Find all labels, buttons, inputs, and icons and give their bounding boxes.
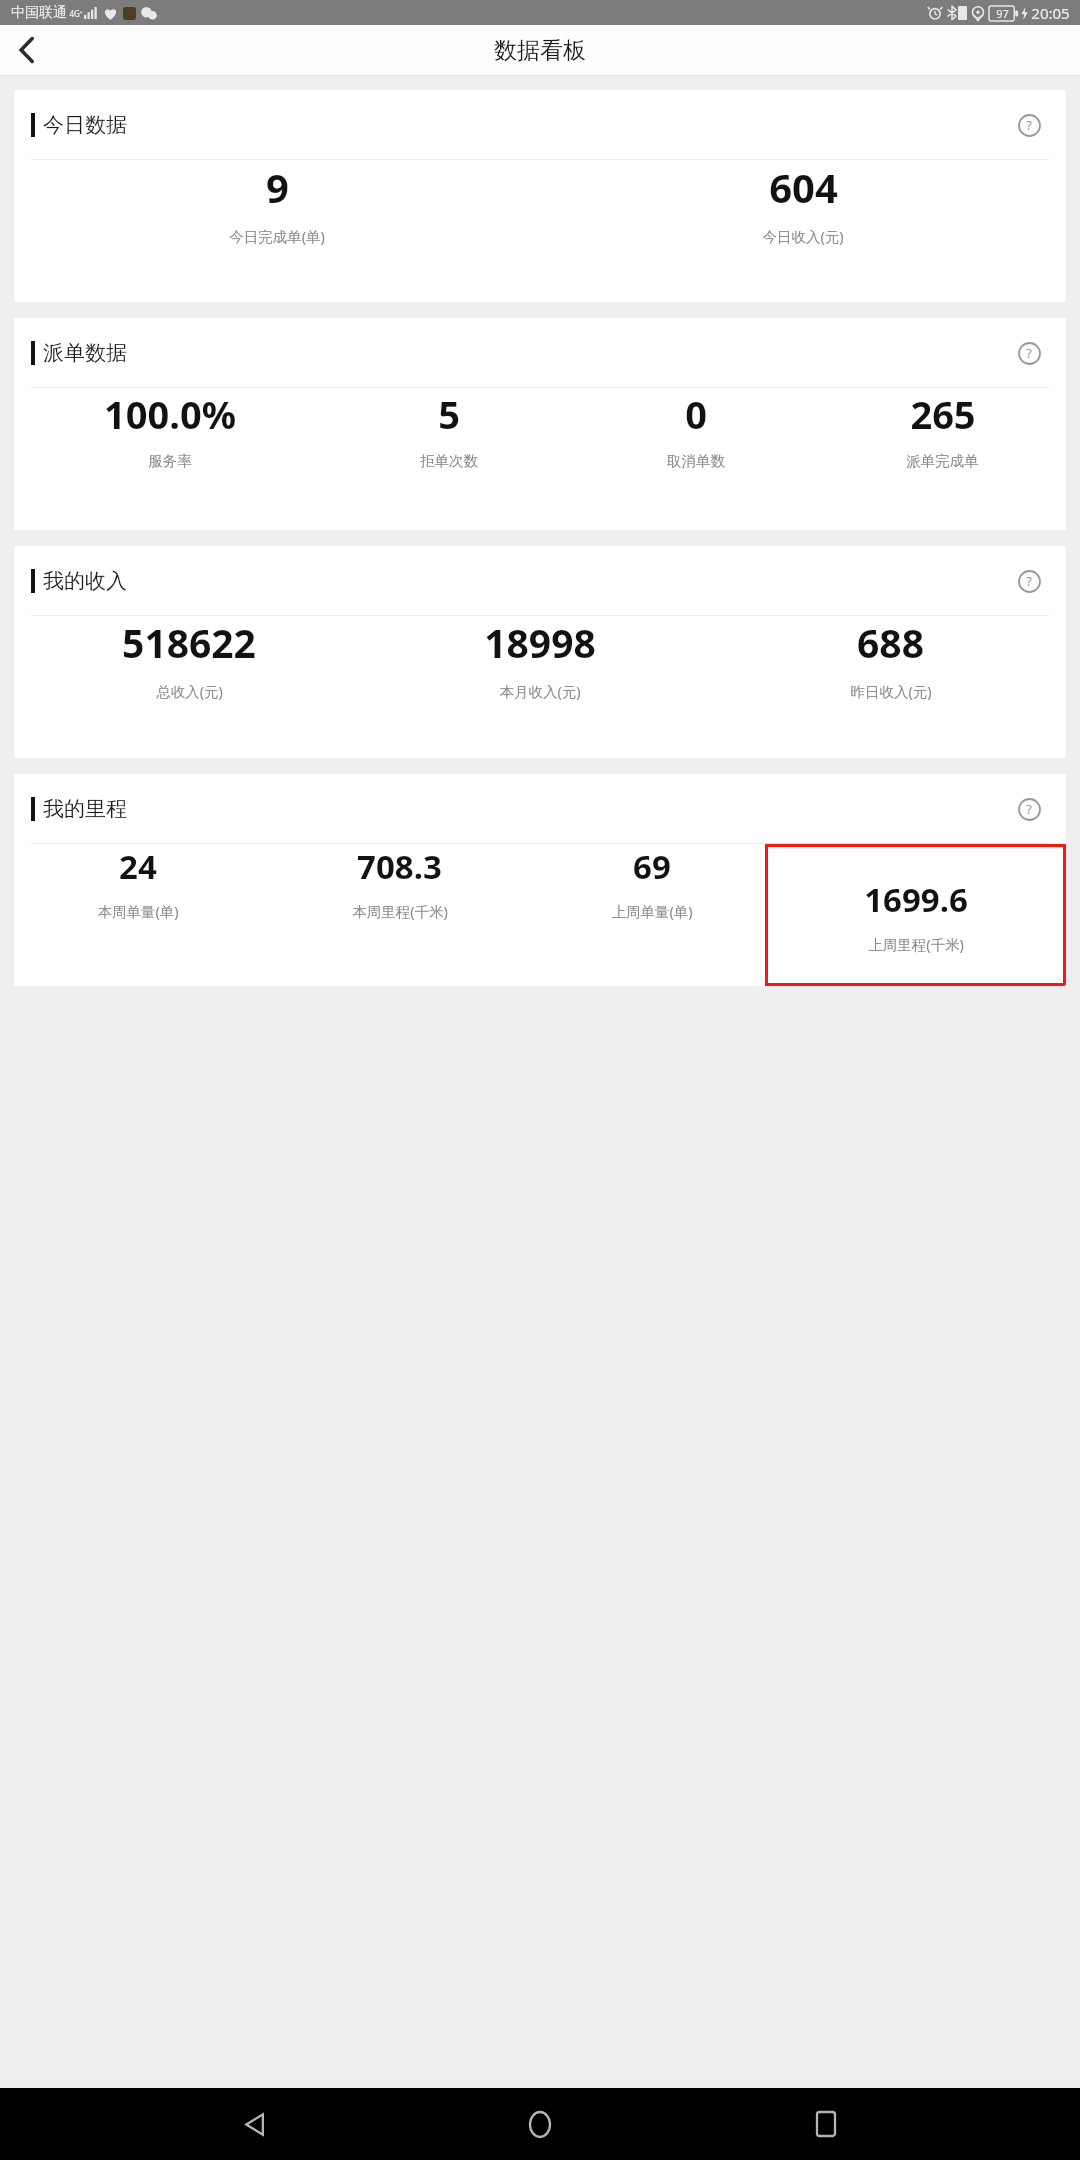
button[interactable]: 派单数据: [14, 318, 1066, 530]
button[interactable]: 今日数据: [14, 90, 1066, 302]
staticText: 派单数据: [43, 340, 127, 366]
button[interactable]: Home: [509, 2093, 571, 2155]
staticText: ?: [1026, 116, 1032, 134]
staticText: 688: [857, 616, 924, 669]
staticText: 69: [633, 844, 671, 889]
staticText: 今日完成单(单): [229, 226, 325, 246]
staticText: 0: [685, 388, 707, 440]
button[interactable]: 1699.6: [765, 844, 1066, 986]
staticText: 我的里程: [43, 796, 127, 822]
staticText: 本月收入(元): [499, 681, 581, 701]
staticText: 取消单数: [667, 452, 725, 470]
staticText: 24: [119, 844, 157, 889]
staticText: 本周单量(单): [97, 901, 179, 921]
staticText: 100.0%: [104, 388, 236, 440]
staticText: 708.3: [357, 844, 442, 889]
staticText: 9: [266, 160, 289, 214]
button[interactable]: 我的里程: [14, 774, 1066, 986]
staticText: ?: [1026, 800, 1032, 818]
button[interactable]: Help: [1009, 561, 1049, 601]
staticText: 昨日收入(元): [850, 681, 932, 701]
staticText: 数据看板: [494, 36, 586, 65]
staticText: 1699.6: [864, 877, 968, 922]
button[interactable]: Recents: [795, 2093, 857, 2155]
button[interactable]: Back: [0, 25, 52, 75]
staticText: 4G⁺: [69, 8, 83, 19]
staticText: 今日数据: [43, 112, 127, 138]
button[interactable]: Help: [1009, 789, 1049, 829]
staticText: 服务率: [148, 452, 192, 470]
staticText: 20:05: [1031, 3, 1070, 23]
staticText: 派单完成单: [906, 452, 979, 470]
staticText: 总收入(元): [156, 681, 223, 701]
button[interactable]: Help: [1009, 105, 1049, 145]
staticText: 5: [438, 388, 460, 440]
staticText: 中国联通: [11, 4, 67, 22]
staticText: 604: [769, 160, 838, 214]
button[interactable]: Help: [1009, 333, 1049, 373]
staticText: 上周单量(单): [611, 901, 693, 921]
staticText: 上周里程(千米): [868, 934, 964, 954]
button[interactable]: 我的收入: [14, 546, 1066, 758]
staticText: 265: [910, 388, 976, 440]
staticText: 18998: [484, 616, 596, 669]
staticText: 518622: [122, 616, 256, 669]
staticText: 今日收入(元): [762, 226, 844, 246]
button[interactable]: Back: [224, 2093, 286, 2155]
staticText: 97: [996, 6, 1009, 21]
staticText: ?: [1026, 344, 1032, 362]
staticText: 我的收入: [43, 568, 127, 594]
staticText: ?: [1026, 572, 1032, 590]
staticText: 本周里程(千米): [352, 901, 448, 921]
staticText: 拒单次数: [420, 452, 478, 470]
